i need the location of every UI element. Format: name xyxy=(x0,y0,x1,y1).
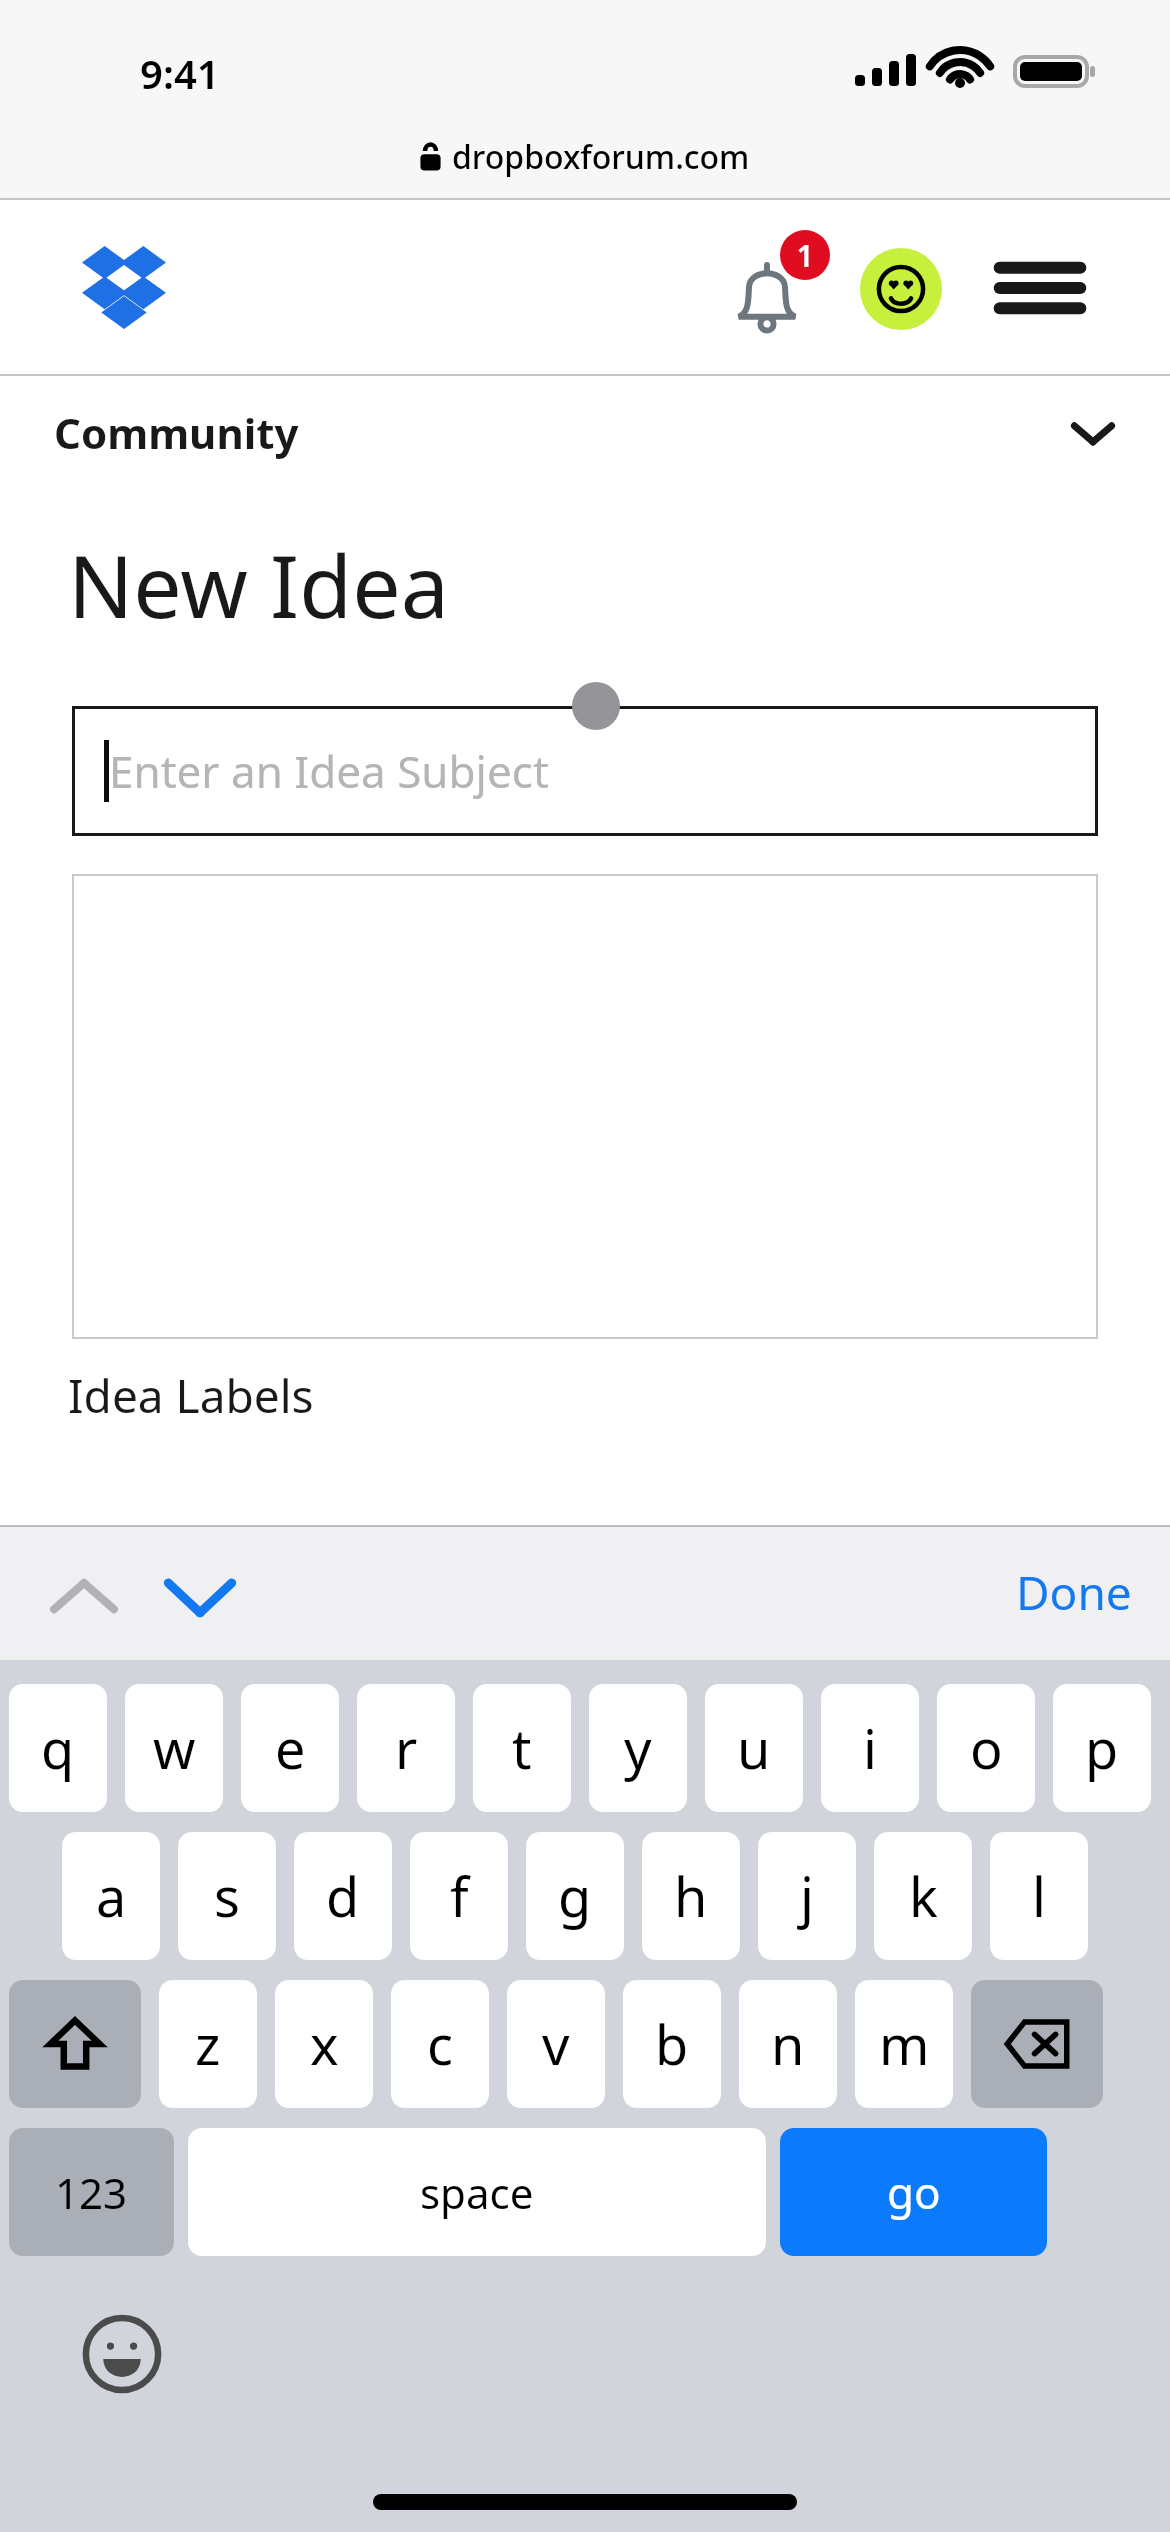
staticText: p xyxy=(1085,1711,1119,1785)
staticText: a xyxy=(96,1859,127,1933)
button[interactable]: h xyxy=(642,1832,740,1960)
button[interactable]: d xyxy=(294,1832,392,1960)
button[interactable]: k xyxy=(874,1832,972,1960)
button[interactable]: t xyxy=(473,1684,571,1812)
button[interactable]: go xyxy=(780,2128,1047,2256)
button[interactable]: x xyxy=(275,1980,373,2108)
staticText: 1 xyxy=(796,235,814,276)
button[interactable]: v xyxy=(507,1980,605,2108)
staticText: 9:41 xyxy=(140,46,220,100)
staticText: x xyxy=(310,2007,339,2081)
button[interactable]: j xyxy=(758,1832,856,1960)
staticText: j xyxy=(800,1859,814,1933)
staticText: v xyxy=(542,2007,570,2081)
button[interactable]: 123 xyxy=(9,2128,174,2256)
staticText: g xyxy=(558,1859,592,1933)
button[interactable]: e xyxy=(241,1684,339,1812)
button[interactable]: g xyxy=(526,1832,624,1960)
button[interactable]: Shift xyxy=(9,1980,141,2108)
button[interactable]: a xyxy=(62,1832,160,1960)
staticText: Enter an Idea Subject xyxy=(109,741,549,801)
other: Expand navigation xyxy=(1062,401,1124,463)
button[interactable]: p xyxy=(1053,1684,1151,1812)
staticText: d xyxy=(326,1859,360,1933)
button[interactable]: c xyxy=(391,1980,489,2108)
button[interactable]: Enter an Idea Subject xyxy=(72,706,1098,836)
button[interactable]: u xyxy=(705,1684,803,1812)
button[interactable]: Notifications, 1 unread xyxy=(728,230,838,342)
button[interactable]: w xyxy=(125,1684,223,1812)
button[interactable]: Dropbox home xyxy=(82,242,166,324)
staticText: Done xyxy=(1016,1561,1132,1624)
staticText: b xyxy=(655,2007,689,2081)
button[interactable]: Next field xyxy=(156,1553,244,1641)
button[interactable]: z xyxy=(159,1980,257,2108)
button[interactable]: space xyxy=(188,2128,766,2256)
button[interactable]: q xyxy=(9,1684,107,1812)
button[interactable]: Done xyxy=(998,1549,1150,1636)
button[interactable]: Profile xyxy=(860,248,942,330)
staticText: i xyxy=(863,1711,877,1785)
button[interactable]: s xyxy=(178,1832,276,1960)
staticText: New Idea xyxy=(68,526,449,643)
staticText: y xyxy=(624,1711,652,1785)
staticText: m xyxy=(879,2007,930,2081)
staticText: e xyxy=(275,1711,306,1785)
staticText: dropboxforum.com xyxy=(452,135,750,179)
button[interactable]: dropboxforum.com xyxy=(420,135,750,179)
button[interactable]: m xyxy=(855,1980,953,2108)
button[interactable]: b xyxy=(623,1980,721,2108)
button[interactable]: y xyxy=(589,1684,687,1812)
staticText: t xyxy=(512,1711,532,1785)
button[interactable]: r xyxy=(357,1684,455,1812)
staticText: n xyxy=(771,2007,805,2081)
button[interactable]: Menu xyxy=(992,244,1088,332)
button[interactable]: i xyxy=(821,1684,919,1812)
button[interactable]: Community xyxy=(0,376,1170,488)
staticText: Community xyxy=(54,404,299,461)
staticText: Idea Labels xyxy=(68,1364,314,1427)
staticText: q xyxy=(41,1711,75,1785)
staticText: u xyxy=(737,1711,771,1785)
staticText: l xyxy=(1032,1859,1046,1933)
button[interactable]: l xyxy=(990,1832,1088,1960)
staticText: h xyxy=(674,1859,708,1933)
button[interactable]: o xyxy=(937,1684,1035,1812)
button[interactable]: Backspace xyxy=(971,1980,1103,2108)
button[interactable]: f xyxy=(410,1832,508,1960)
button[interactable]: Emoji keyboard xyxy=(80,2312,164,2396)
button[interactable] xyxy=(72,874,1098,1339)
staticText: go xyxy=(887,2162,941,2222)
staticText: space xyxy=(420,2164,534,2221)
staticText: 123 xyxy=(55,2164,128,2221)
staticText: r xyxy=(395,1711,418,1785)
staticText: k xyxy=(909,1859,938,1933)
staticText: s xyxy=(214,1859,240,1933)
button[interactable]: Previous field xyxy=(40,1553,128,1641)
staticText: f xyxy=(450,1859,469,1933)
staticText: o xyxy=(970,1711,1003,1785)
staticText: c xyxy=(427,2007,453,2081)
button[interactable]: n xyxy=(739,1980,837,2108)
staticText: w xyxy=(153,1711,196,1785)
staticText: z xyxy=(195,2007,221,2081)
